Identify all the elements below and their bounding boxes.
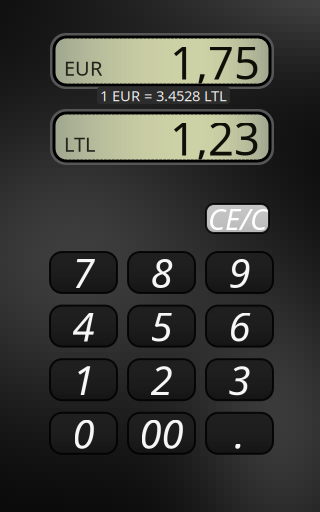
staticText: 1 EUR = 3.4528 LTL (100, 86, 227, 105)
button[interactable]: 7 (50, 252, 117, 293)
staticText: EUR (64, 55, 102, 81)
staticText: 8 (150, 246, 172, 299)
button[interactable]: 2 (128, 359, 195, 400)
button[interactable]: 1 (50, 359, 117, 400)
button[interactable]: 8 (128, 252, 195, 293)
staticText: 2 (150, 353, 172, 406)
button[interactable]: 00 (128, 413, 195, 454)
button[interactable]: . (206, 413, 273, 454)
button[interactable]: 3 (206, 359, 273, 400)
staticText: 1,75 (170, 32, 260, 92)
button[interactable]: 4 (50, 306, 117, 347)
staticText: 4 (72, 299, 94, 353)
staticText: 1 (72, 353, 94, 406)
staticText: 9 (228, 246, 250, 299)
button[interactable]: 0 (50, 413, 117, 454)
staticText: 1,23 (170, 108, 260, 168)
staticText: LTL (64, 131, 95, 157)
button[interactable]: CE/C (206, 204, 269, 233)
staticText: 6 (228, 299, 250, 353)
button[interactable]: 5 (128, 306, 195, 347)
staticText: 7 (72, 246, 94, 299)
button[interactable]: 6 (206, 306, 273, 347)
staticText: 5 (150, 299, 172, 353)
staticText: 00 (139, 407, 183, 460)
staticText: CE/C (208, 199, 267, 238)
staticText: . (234, 407, 244, 460)
staticText: 3 (228, 353, 250, 406)
staticText: 0 (72, 407, 94, 460)
button[interactable]: 9 (206, 252, 273, 293)
